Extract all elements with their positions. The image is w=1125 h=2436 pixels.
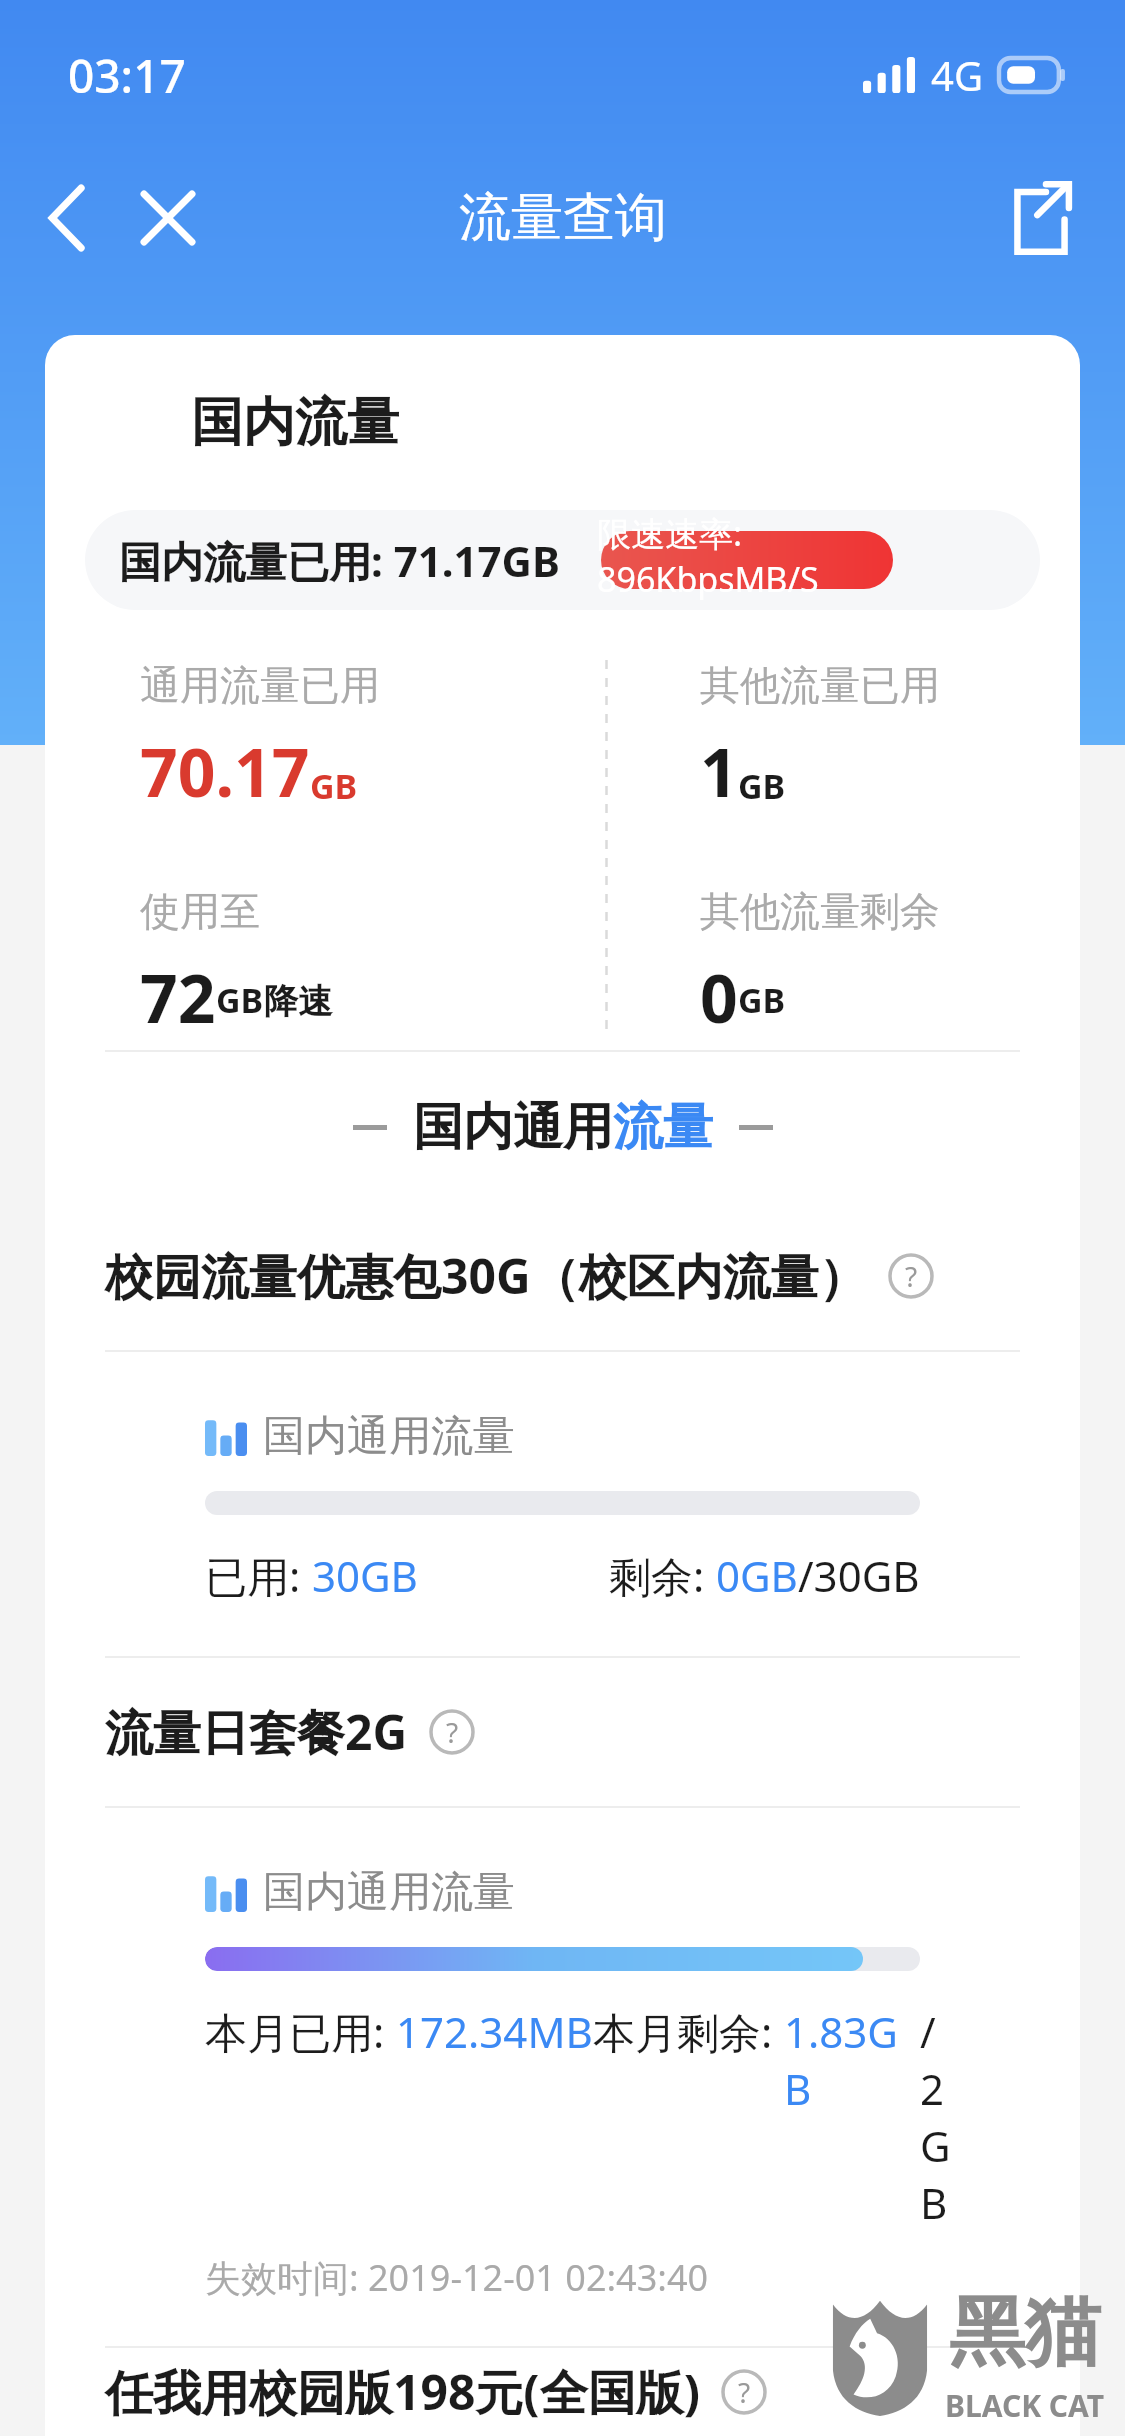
staticText: 任我用校园版198元(全国版) — [105, 2359, 700, 2425]
button[interactable]: Back — [22, 172, 114, 264]
staticText: ? — [446, 1713, 459, 1751]
staticText: 4G — [931, 48, 983, 102]
staticText: ? — [738, 2373, 751, 2411]
staticText: 流量日套餐2G — [105, 1699, 408, 1765]
staticText: 降速 — [264, 980, 332, 1023]
staticText: 已用: — [205, 1547, 312, 1604]
staticText: 校园流量优惠包30G（校区内流量） — [105, 1243, 867, 1309]
staticText: 896KbpsMB/S — [597, 556, 819, 602]
staticText: 1.83GB — [784, 2003, 920, 2117]
staticText: 国内通用流量 — [263, 1410, 515, 1463]
button[interactable]: Help — [887, 1252, 935, 1300]
staticText: GB — [738, 977, 786, 1023]
staticText: 1 — [700, 726, 738, 816]
staticText: 0GB — [716, 1547, 798, 1604]
staticText: 其他流量已用 — [700, 660, 940, 710]
staticText: 国内通用流量 — [263, 1866, 515, 1919]
button[interactable]: 任我用校园版198元(全国版) — [45, 2348, 1080, 2436]
button[interactable]: Share — [995, 172, 1087, 264]
staticText: GB — [310, 763, 358, 809]
staticText: 通用流量已用 — [140, 660, 380, 710]
button[interactable]: Help — [720, 2368, 768, 2416]
staticText: 本月剩余: — [593, 2003, 784, 2060]
staticText: 70.17 — [140, 726, 310, 816]
staticText: GB — [738, 763, 786, 809]
staticText: 国内流量已用: 71.17GB — [119, 532, 560, 589]
staticText: 国内流量 — [191, 390, 399, 456]
staticText: GB — [216, 977, 264, 1023]
staticText: 剩余: — [609, 1547, 716, 1604]
staticText: 限速速率: — [597, 510, 743, 556]
staticText: 172.34MB — [396, 2003, 593, 2060]
staticText: 0 — [700, 952, 738, 1030]
button[interactable]: 国内流量 — [45, 335, 545, 510]
staticText: 黑猫 — [949, 2285, 1101, 2381]
staticText: 其他流量剩余 — [700, 886, 940, 936]
staticText: 本月已用: — [205, 2003, 396, 2060]
button[interactable]: Close — [122, 172, 214, 264]
staticText: /30GB — [798, 1547, 920, 1604]
button[interactable]: 流量日套餐2G — [45, 1658, 1080, 1806]
staticText: 流量查询 — [459, 185, 667, 251]
staticText: 30GB — [312, 1547, 418, 1604]
staticText: 72 — [140, 952, 216, 1030]
staticText: 失效时间: 2019-12-01 02:43:40 — [205, 2253, 709, 2302]
button[interactable]: 校园流量优惠包30G（校区内流量） — [45, 1202, 1080, 1350]
staticText: ? — [905, 1257, 918, 1295]
staticText: 03:17 — [68, 44, 186, 107]
staticText: 使用至 — [140, 886, 260, 936]
button[interactable]: Help — [428, 1708, 476, 1756]
staticText: 国内通用流量 — [413, 1096, 713, 1159]
staticText: BLACK CAT — [945, 2385, 1105, 2426]
